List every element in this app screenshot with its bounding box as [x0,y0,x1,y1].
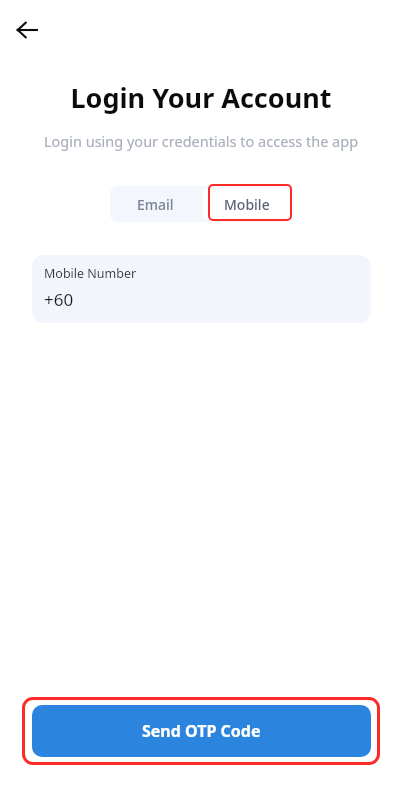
button[interactable]: Email [110,186,201,222]
button[interactable]: Mobile [203,188,290,220]
staticText: Login using your credentials to access t… [0,131,402,151]
button[interactable]: Send OTP Code [32,705,371,757]
staticText: Mobile [224,195,270,214]
staticText: Login Your Account [0,79,402,116]
button[interactable]: Mobile Number [32,255,371,323]
button[interactable]: Back [9,12,45,48]
staticText: +60 [44,288,74,311]
staticText: Mobile Number [44,265,137,282]
staticText: Send OTP Code [142,720,261,742]
staticText: Email [137,195,174,214]
